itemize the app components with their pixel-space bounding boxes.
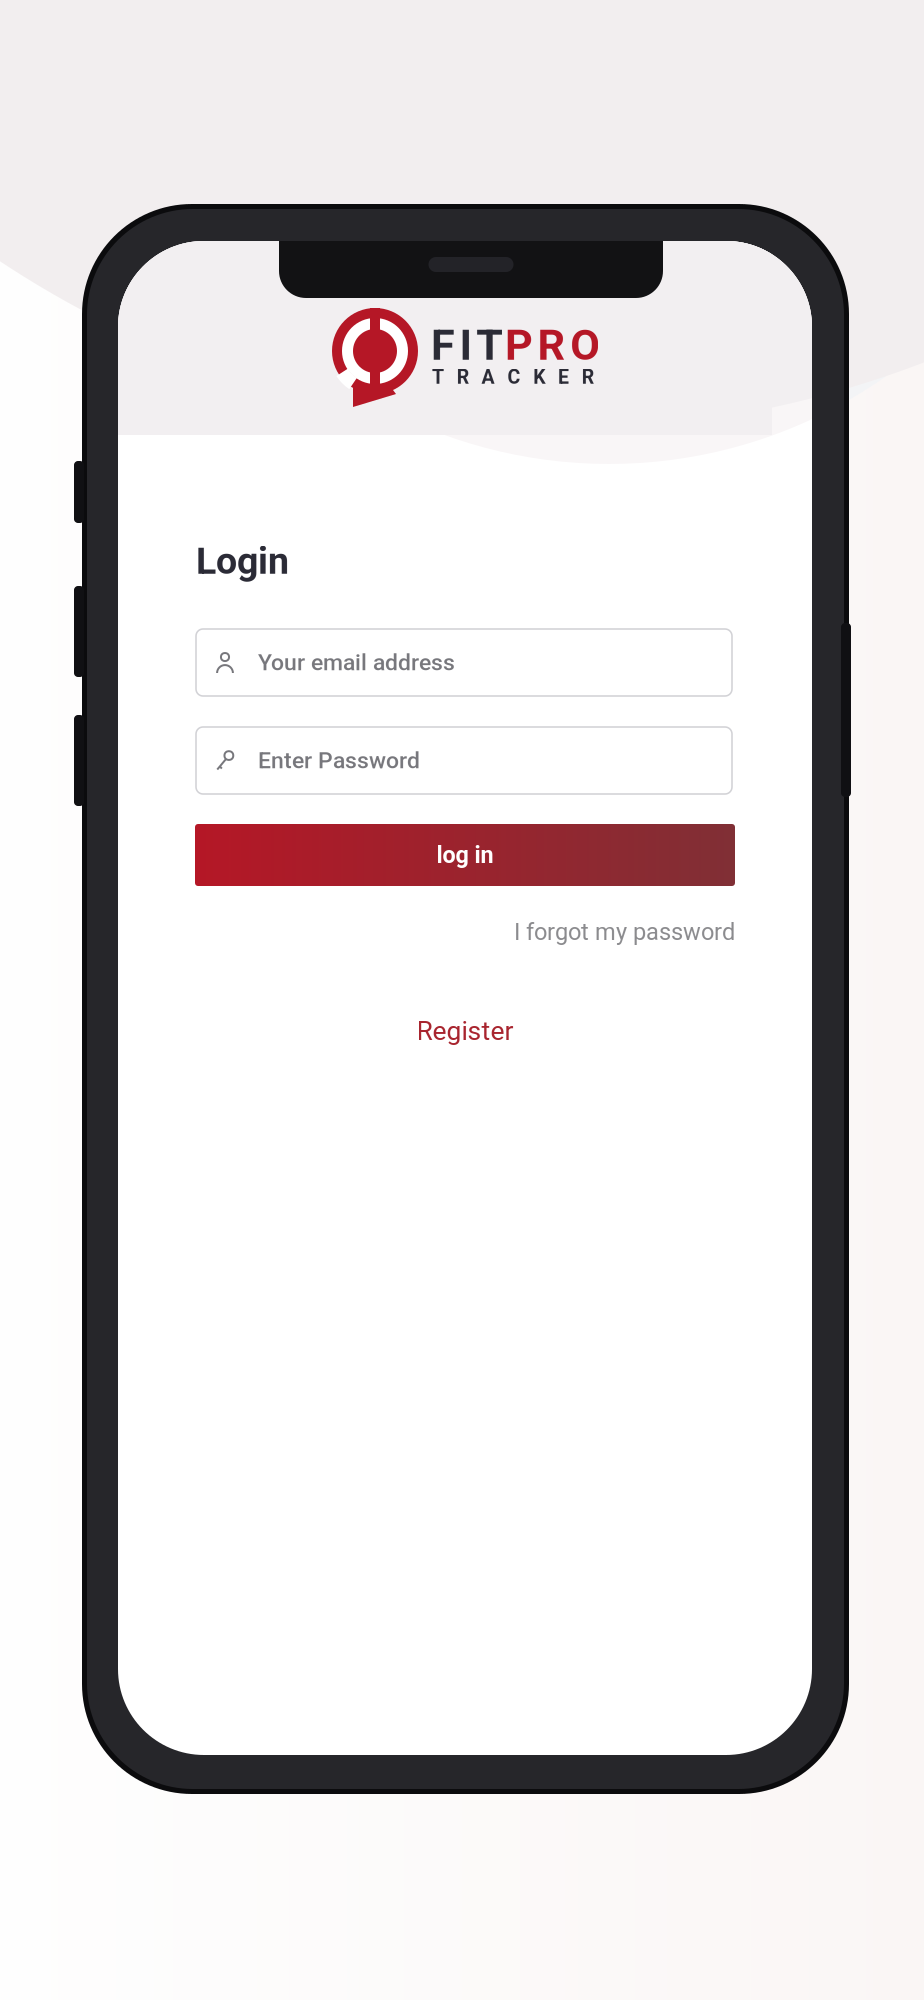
staticText: log in xyxy=(436,841,493,869)
staticText: Register xyxy=(416,1015,513,1046)
staticText: FIT xyxy=(431,320,503,370)
button[interactable]: log in xyxy=(195,824,735,886)
staticText: PRO xyxy=(505,320,600,370)
button[interactable]: Your email address xyxy=(196,629,732,696)
staticText: Login xyxy=(196,539,289,583)
button[interactable]: Register xyxy=(195,1011,735,1051)
button[interactable]: I forgot my password xyxy=(195,915,735,949)
staticText: Enter Password xyxy=(258,747,420,774)
staticText: TRACKER xyxy=(432,366,594,388)
staticText: I forgot my password xyxy=(514,918,735,946)
staticText: Your email address xyxy=(258,649,455,676)
button[interactable]: Enter Password xyxy=(196,727,732,794)
